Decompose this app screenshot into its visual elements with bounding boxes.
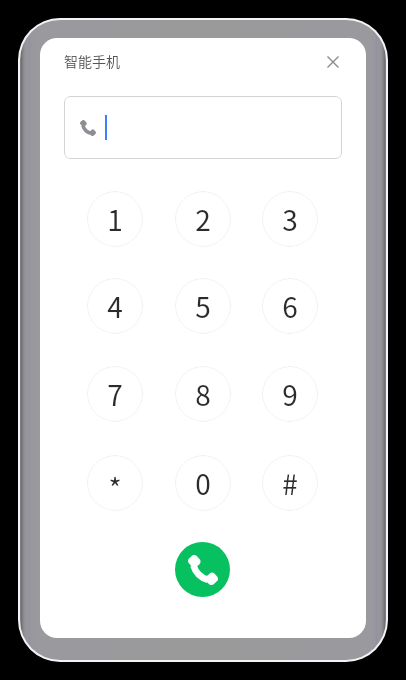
button[interactable]: * xyxy=(87,455,143,511)
staticText: 4 xyxy=(107,286,123,327)
button[interactable]: # xyxy=(262,455,318,511)
staticText: * xyxy=(108,467,122,508)
staticText: 7 xyxy=(107,374,123,415)
staticText: 1 xyxy=(107,199,123,240)
button[interactable]: 6 xyxy=(262,278,318,334)
button[interactable]: 5 xyxy=(175,278,231,334)
button[interactable]: Call xyxy=(175,542,230,597)
button[interactable]: 0 xyxy=(175,455,231,511)
staticText: 0 xyxy=(195,463,211,504)
button[interactable]: 3 xyxy=(262,191,318,247)
staticText: 2 xyxy=(195,199,211,240)
button[interactable]: 1 xyxy=(87,191,143,247)
button[interactable]: Close xyxy=(321,50,345,74)
button[interactable] xyxy=(64,96,342,159)
staticText: 8 xyxy=(195,374,211,415)
staticText: 3 xyxy=(282,199,298,240)
staticText: # xyxy=(282,463,298,504)
staticText: 5 xyxy=(195,286,211,327)
staticText: 智能手机 xyxy=(64,51,120,71)
button[interactable]: 7 xyxy=(87,366,143,422)
button[interactable]: 2 xyxy=(175,191,231,247)
staticText: 9 xyxy=(282,374,298,415)
button[interactable]: 9 xyxy=(262,366,318,422)
button[interactable]: 8 xyxy=(175,366,231,422)
button[interactable]: 4 xyxy=(87,278,143,334)
staticText: 6 xyxy=(282,286,298,327)
